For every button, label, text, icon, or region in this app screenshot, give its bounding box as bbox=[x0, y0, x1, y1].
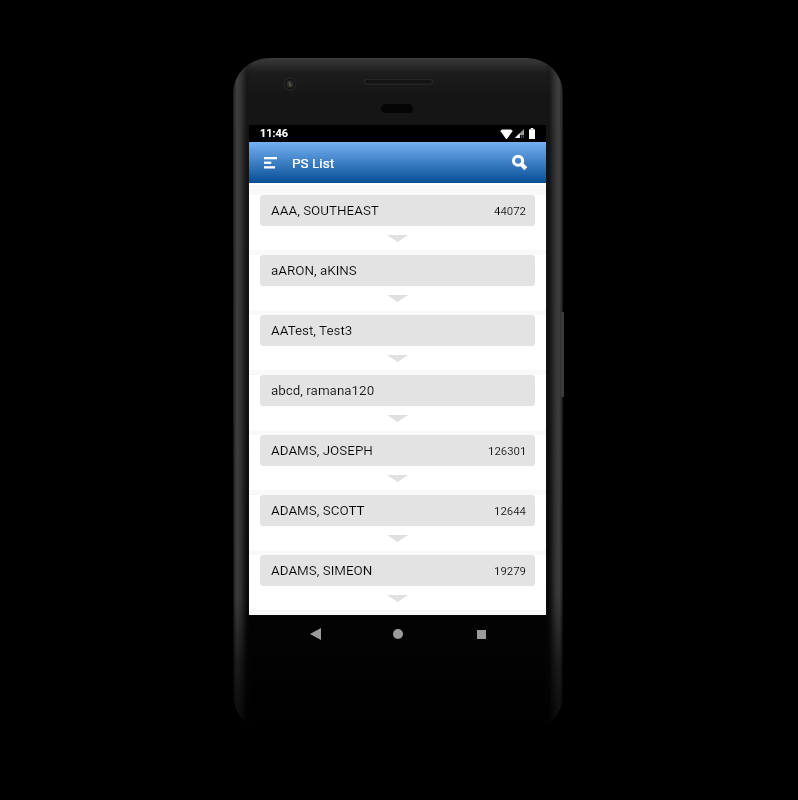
staticText: AAA, SOUTHEAST bbox=[271, 203, 379, 219]
staticText: 12644 bbox=[494, 504, 527, 517]
staticText: aARON, aKINS bbox=[271, 263, 357, 279]
button[interactable]: abcd, ramana120 bbox=[260, 375, 535, 406]
button[interactable]: Search bbox=[508, 151, 532, 175]
staticText: PS List bbox=[292, 155, 335, 171]
staticText: 19279 bbox=[494, 564, 527, 577]
button[interactable]: AAA, SOUTHEAST bbox=[260, 195, 535, 226]
button[interactable]: ADAMS, SIMEON bbox=[260, 555, 535, 586]
button[interactable]: Home bbox=[380, 616, 416, 652]
staticText: ADAMS, JOSEPH bbox=[271, 443, 373, 459]
button[interactable]: Recent apps bbox=[463, 616, 499, 652]
staticText: ADAMS, SIMEON bbox=[271, 563, 373, 579]
button[interactable]: aARON, aKINS bbox=[260, 255, 535, 286]
staticText: 11:46 bbox=[260, 127, 288, 140]
button[interactable]: AATest, Test3 bbox=[260, 315, 535, 346]
staticText: ADAMS, SCOTT bbox=[271, 503, 365, 519]
button[interactable]: Back bbox=[297, 616, 333, 652]
staticText: AATest, Test3 bbox=[271, 323, 353, 339]
staticText: abcd, ramana120 bbox=[271, 383, 375, 399]
button[interactable]: ADAMS, JOSEPH bbox=[260, 435, 535, 466]
staticText: 44072 bbox=[494, 204, 527, 217]
button[interactable]: Open navigation menu bbox=[259, 152, 281, 174]
staticText: 126301 bbox=[488, 444, 527, 457]
button[interactable]: ADAMS, SCOTT bbox=[260, 495, 535, 526]
